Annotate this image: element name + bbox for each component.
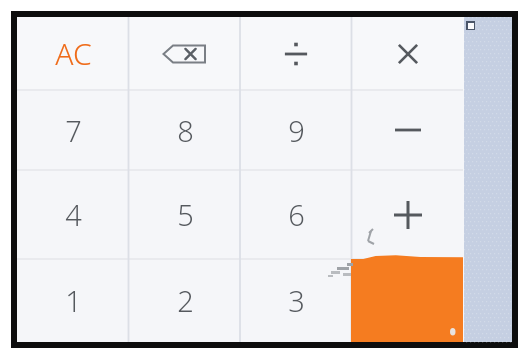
staticText: 8	[177, 111, 194, 150]
staticText: 5	[177, 195, 194, 234]
other: Divide	[281, 39, 311, 69]
other: Plus	[394, 201, 422, 229]
button[interactable]: 2	[129, 259, 241, 342]
staticText: 4	[65, 195, 82, 234]
staticText: 9	[288, 111, 305, 150]
button[interactable]: 3	[240, 259, 352, 342]
button[interactable]: Backspace	[129, 17, 241, 90]
staticText: AC	[55, 33, 92, 74]
button[interactable]: AC	[17, 17, 129, 90]
button[interactable]: 8	[129, 90, 241, 170]
button[interactable]: Equals	[351, 259, 463, 342]
button[interactable]: 7	[17, 90, 129, 170]
button[interactable]: 5	[129, 170, 241, 259]
button[interactable]: 4	[17, 170, 129, 259]
button[interactable]: 6	[240, 170, 352, 259]
button[interactable]: Multiply	[352, 17, 464, 90]
other: Backspace	[162, 39, 208, 69]
staticText: 3	[288, 281, 305, 320]
button[interactable]: Divide	[240, 17, 352, 90]
staticText: 6	[288, 195, 305, 234]
staticText: 1	[65, 281, 82, 320]
button[interactable]: 1	[17, 259, 129, 342]
button[interactable]: Minus	[352, 90, 464, 170]
other: Multiply	[396, 42, 420, 66]
staticText: 7	[65, 111, 82, 150]
other: Minus	[395, 118, 421, 142]
staticText: 2	[177, 281, 194, 320]
button[interactable]: Plus	[352, 170, 464, 259]
button[interactable]: 9	[240, 90, 352, 170]
button[interactable]	[352, 259, 464, 342]
